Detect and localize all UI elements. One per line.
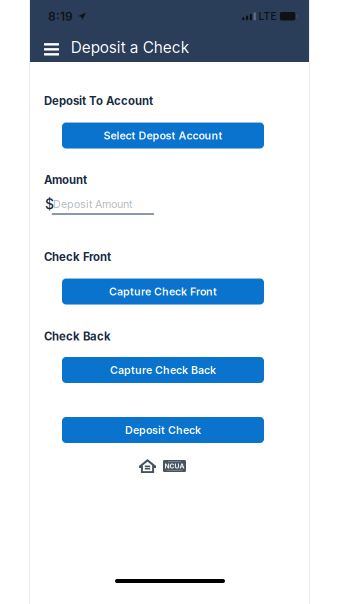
staticText: Deposit a Check <box>71 38 189 57</box>
button[interactable]: Capture Check Back <box>62 357 264 383</box>
button[interactable]: Menu <box>38 34 64 64</box>
staticText: $ <box>45 196 54 213</box>
staticText: 8:19 <box>48 9 73 23</box>
staticText: Select Depost Account <box>103 129 222 142</box>
staticText: Check Back <box>44 330 111 343</box>
staticText: Capture Check Front <box>109 285 217 298</box>
staticText: Capture Check Back <box>110 363 216 376</box>
button[interactable]: Deposit Check <box>62 417 264 443</box>
staticText: NCUA <box>164 462 184 470</box>
staticText: Deposit Amount <box>53 198 132 211</box>
button[interactable]: Select Depost Account <box>62 122 264 148</box>
staticText: LTE <box>258 10 276 22</box>
button[interactable]: Capture Check Front <box>62 278 264 304</box>
staticText: Check Front <box>44 250 111 264</box>
staticText: Deposit To Account <box>44 94 153 108</box>
staticText: Amount <box>44 173 87 187</box>
staticText: Deposit Check <box>125 423 201 436</box>
